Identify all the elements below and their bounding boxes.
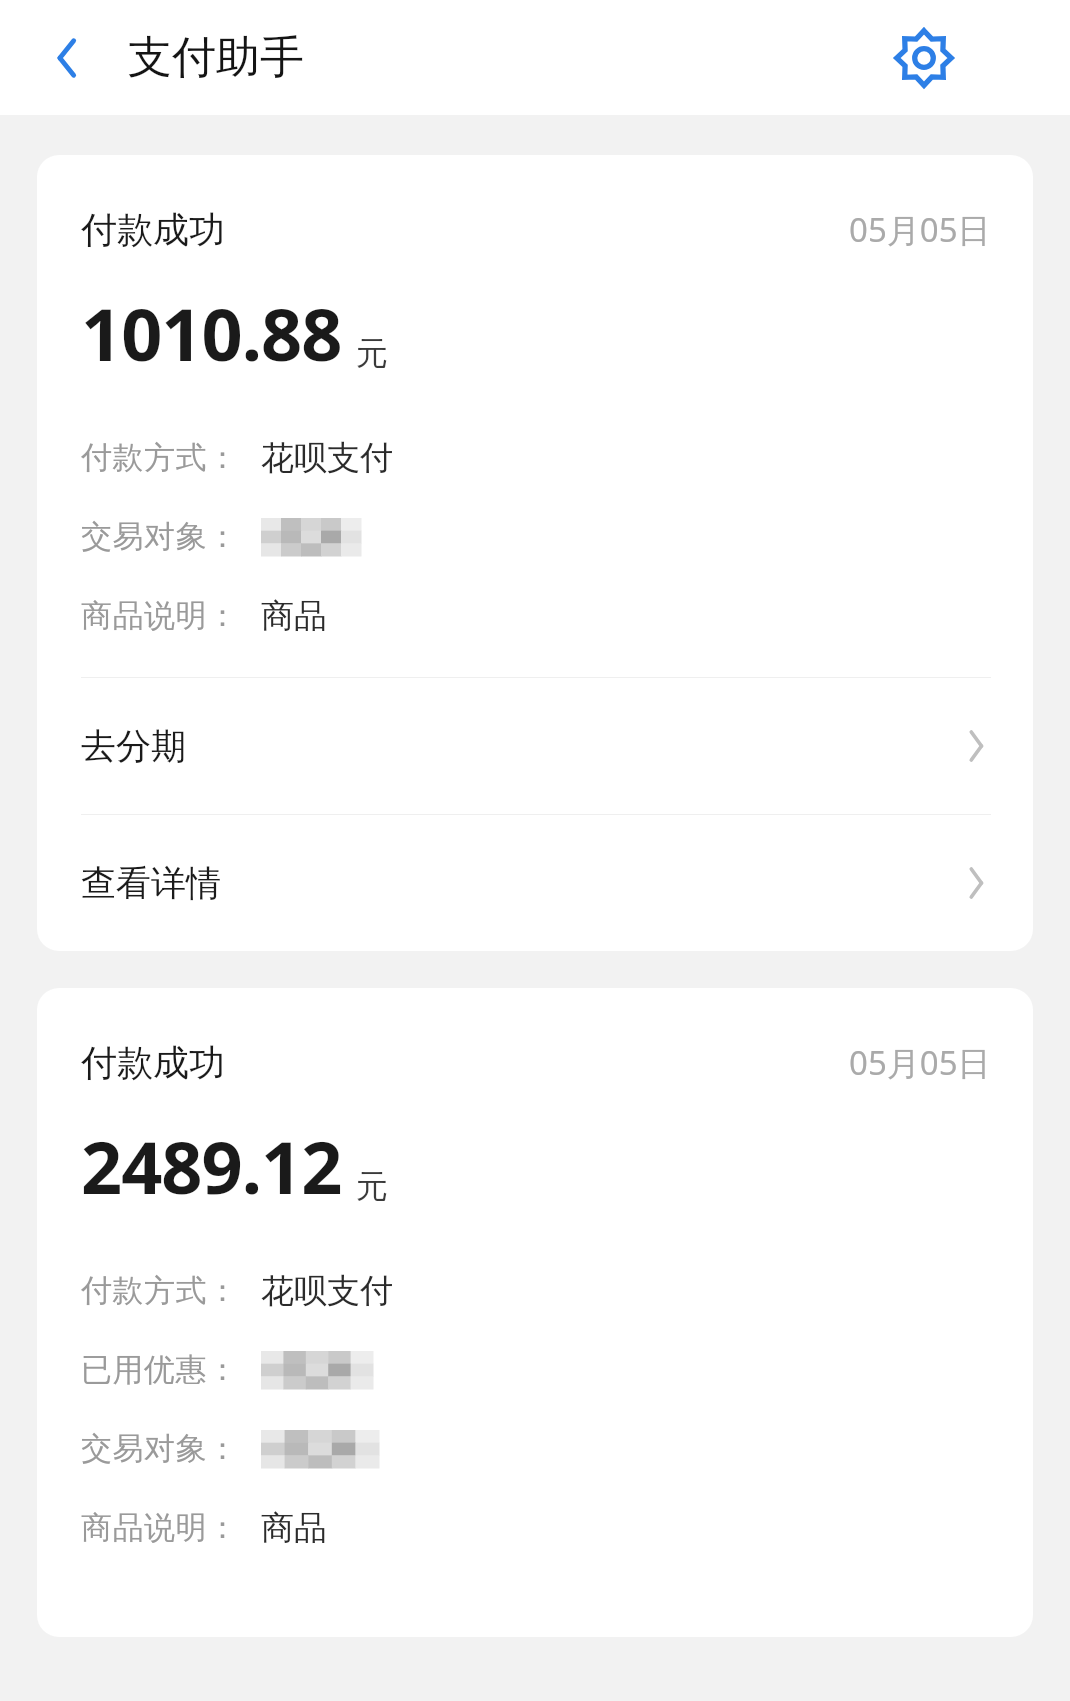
staticText: 支付助手 xyxy=(128,30,304,85)
staticText: 商品 xyxy=(261,1507,327,1549)
button[interactable]: 去分期 xyxy=(81,678,991,814)
staticText: 已用优惠： xyxy=(81,1350,239,1389)
staticText: 元 xyxy=(356,1166,388,1206)
staticText: 商品 xyxy=(261,595,327,637)
staticText: 查看详情 xyxy=(81,861,957,905)
button[interactable]: Settings xyxy=(878,12,970,104)
staticText: 商品说明： xyxy=(81,1508,239,1547)
staticText: 2489.12 xyxy=(81,1117,342,1215)
button[interactable]: 付款成功 xyxy=(37,988,1033,1637)
staticText: 花呗支付 xyxy=(261,1270,393,1312)
staticText: 付款方式： xyxy=(81,438,239,477)
staticText: 交易对象： xyxy=(81,517,239,556)
staticText: 元 xyxy=(356,333,388,373)
button[interactable]: Back xyxy=(24,12,116,104)
staticText: 花呗支付 xyxy=(261,437,393,479)
staticText: 05月05日 xyxy=(849,1040,991,1085)
staticText: 付款成功 xyxy=(81,1040,849,1085)
button[interactable]: 付款成功 xyxy=(37,155,1033,951)
staticText: 05月05日 xyxy=(849,207,991,252)
staticText: 交易对象： xyxy=(81,1429,239,1468)
staticText: 去分期 xyxy=(81,724,957,768)
staticText: 付款成功 xyxy=(81,207,849,252)
staticText: 1010.88 xyxy=(81,284,342,382)
staticText: 付款方式： xyxy=(81,1271,239,1310)
button[interactable]: 查看详情 xyxy=(81,815,991,951)
staticText: 商品说明： xyxy=(81,596,239,635)
